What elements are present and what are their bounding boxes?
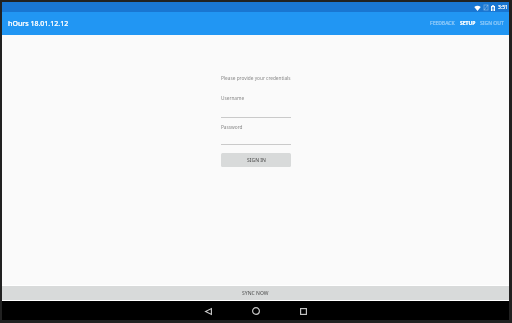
button[interactable]: SIGN OUT	[478, 15, 506, 32]
staticText: Username	[221, 95, 245, 101]
staticText: hOurs 18.01.12.12	[8, 19, 69, 29]
button[interactable]: Recents	[294, 302, 312, 320]
staticText: SETUP	[460, 20, 476, 27]
staticText: SYNC NOW	[242, 290, 269, 297]
button[interactable]: SYNC NOW	[2, 286, 509, 300]
button[interactable]: Username	[221, 95, 291, 118]
button[interactable]: Back	[199, 302, 217, 320]
button[interactable]: FEEDBACK	[428, 15, 457, 32]
button[interactable]: SIGN IN	[221, 153, 291, 167]
button[interactable]: Password	[221, 124, 291, 145]
staticText: Password	[221, 124, 243, 130]
staticText: SIGN IN	[247, 157, 266, 164]
button[interactable]: SETUP	[458, 15, 478, 32]
staticText: FEEDBACK	[430, 20, 455, 27]
staticText: Please provide your credentials	[221, 75, 291, 81]
button[interactable]: Home	[247, 302, 265, 320]
staticText: 3:51	[498, 4, 508, 11]
staticText: SIGN OUT	[480, 20, 504, 27]
